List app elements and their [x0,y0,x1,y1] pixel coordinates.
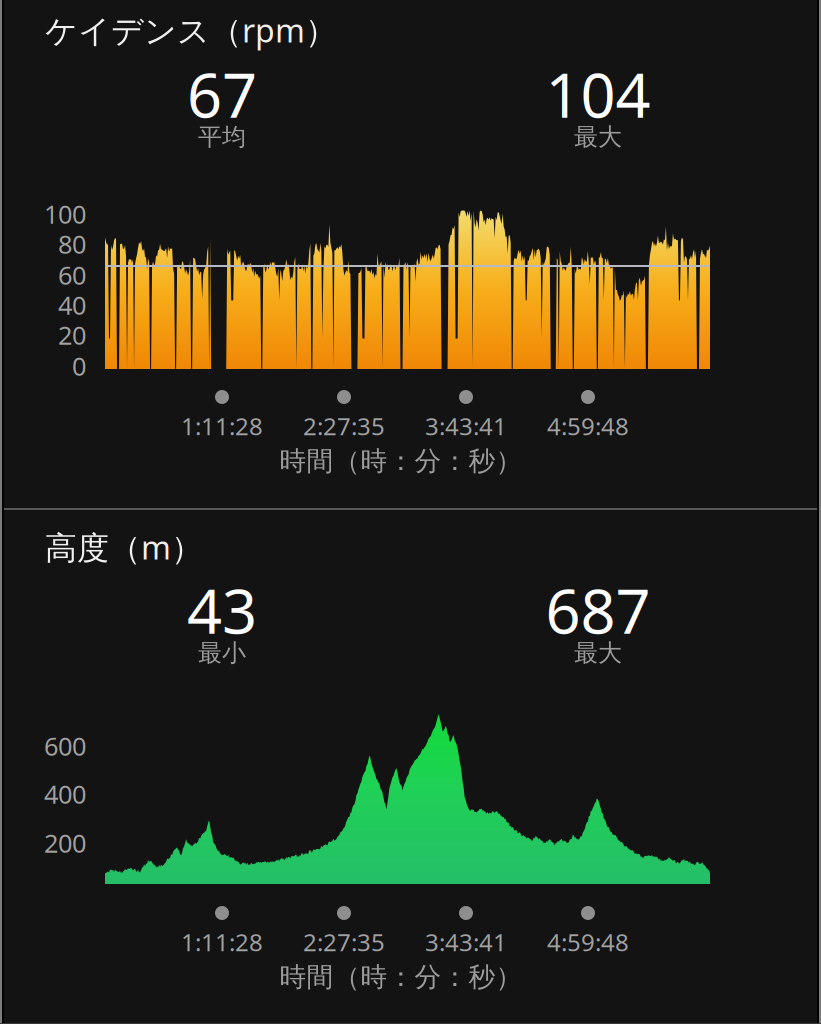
staticText: 1:11:28 [181,926,263,958]
staticText: 200 [44,826,86,860]
staticText: 80 [58,227,86,261]
staticText: 40 [58,288,86,322]
staticText: 3:43:41 [425,926,507,958]
staticText: 1:11:28 [181,410,263,442]
staticText: 2:27:35 [303,410,385,442]
staticText: 平均 [198,122,246,152]
staticText: 600 [44,729,86,763]
staticText: 時間（時：分：秒） [279,445,522,477]
staticText: 最大 [574,122,622,152]
staticText: 4:59:48 [547,926,629,958]
staticText: 3:43:41 [425,410,507,442]
staticText: 687 [545,569,650,651]
staticText: 4:59:48 [547,410,629,442]
staticText: 最小 [198,638,246,668]
staticText: 100 [44,197,86,231]
staticText: 2:27:35 [303,926,385,958]
staticText: 104 [545,53,650,135]
staticText: 最大 [574,638,622,668]
staticText: 43 [187,569,257,651]
staticText: ケイデンス（rpm） [45,9,337,51]
staticText: 400 [44,777,86,811]
staticText: 高度（m） [45,526,203,568]
staticText: 時間（時：分：秒） [279,961,522,993]
staticText: 60 [58,258,86,292]
staticText: 0 [72,349,86,383]
staticText: 20 [58,318,86,352]
staticText: 67 [187,53,257,135]
